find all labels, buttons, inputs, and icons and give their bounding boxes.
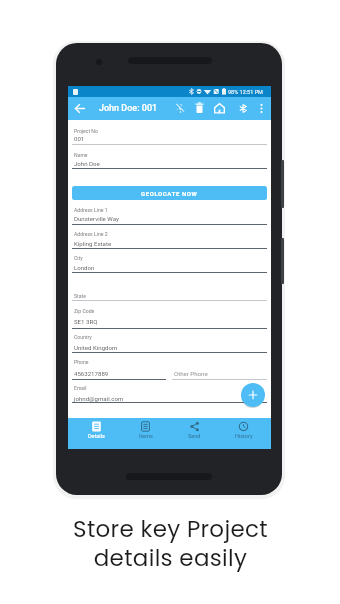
staticText: John Doe (74, 160, 100, 167)
button[interactable] (241, 383, 265, 407)
staticText: Address Line 1 (74, 207, 108, 213)
button[interactable] (72, 251, 267, 274)
staticText: 4563217889 (74, 370, 109, 377)
staticText: John Doe: 001 (99, 103, 158, 114)
staticText: Kipling Estate (74, 240, 112, 247)
staticText: Dunsterville Way (74, 215, 119, 222)
button[interactable] (70, 99, 90, 118)
button[interactable]: Items (121, 418, 170, 449)
button[interactable] (72, 148, 267, 171)
button[interactable] (191, 99, 208, 118)
staticText: Project No (74, 128, 98, 134)
button[interactable] (234, 99, 251, 118)
staticText: GEOLOCATE NOW (141, 190, 198, 197)
button[interactable] (72, 289, 267, 302)
button[interactable]: GEOLOCATE NOW (72, 186, 267, 200)
staticText: 001 (74, 135, 85, 142)
button[interactable] (72, 304, 267, 330)
button[interactable]: Send (170, 418, 219, 449)
button[interactable] (72, 227, 267, 250)
staticText: State (74, 293, 86, 299)
staticText: Name (74, 152, 88, 158)
staticText: Email (74, 385, 87, 391)
staticText: SE1 3RQ (74, 318, 98, 325)
staticText: Phone (74, 359, 89, 365)
staticText: Country (74, 334, 92, 340)
button[interactable]: History (219, 418, 268, 449)
staticText: Details (88, 433, 105, 439)
button[interactable] (253, 99, 269, 118)
button[interactable] (172, 99, 189, 118)
button[interactable] (72, 124, 267, 146)
staticText: Items (139, 433, 153, 439)
staticText: Address Line 2 (74, 231, 108, 237)
button[interactable] (72, 330, 267, 354)
button[interactable] (72, 355, 166, 380)
staticText: London (74, 264, 95, 271)
staticText: United Kingdom (74, 344, 118, 351)
staticText: johnd@gmail.com (74, 395, 124, 402)
staticText: Zip Code (74, 308, 95, 314)
button[interactable] (72, 203, 267, 226)
staticText: History (235, 433, 253, 439)
staticText: Send (188, 433, 201, 439)
staticText: Store key Project details easily (73, 513, 268, 574)
staticText: City (74, 255, 83, 261)
staticText: Other Phone (174, 370, 208, 377)
staticText: 98% 12:51 PM (228, 89, 263, 95)
button[interactable] (72, 381, 267, 404)
button[interactable]: Details (71, 418, 121, 449)
button[interactable] (172, 366, 267, 381)
button[interactable] (211, 99, 228, 118)
